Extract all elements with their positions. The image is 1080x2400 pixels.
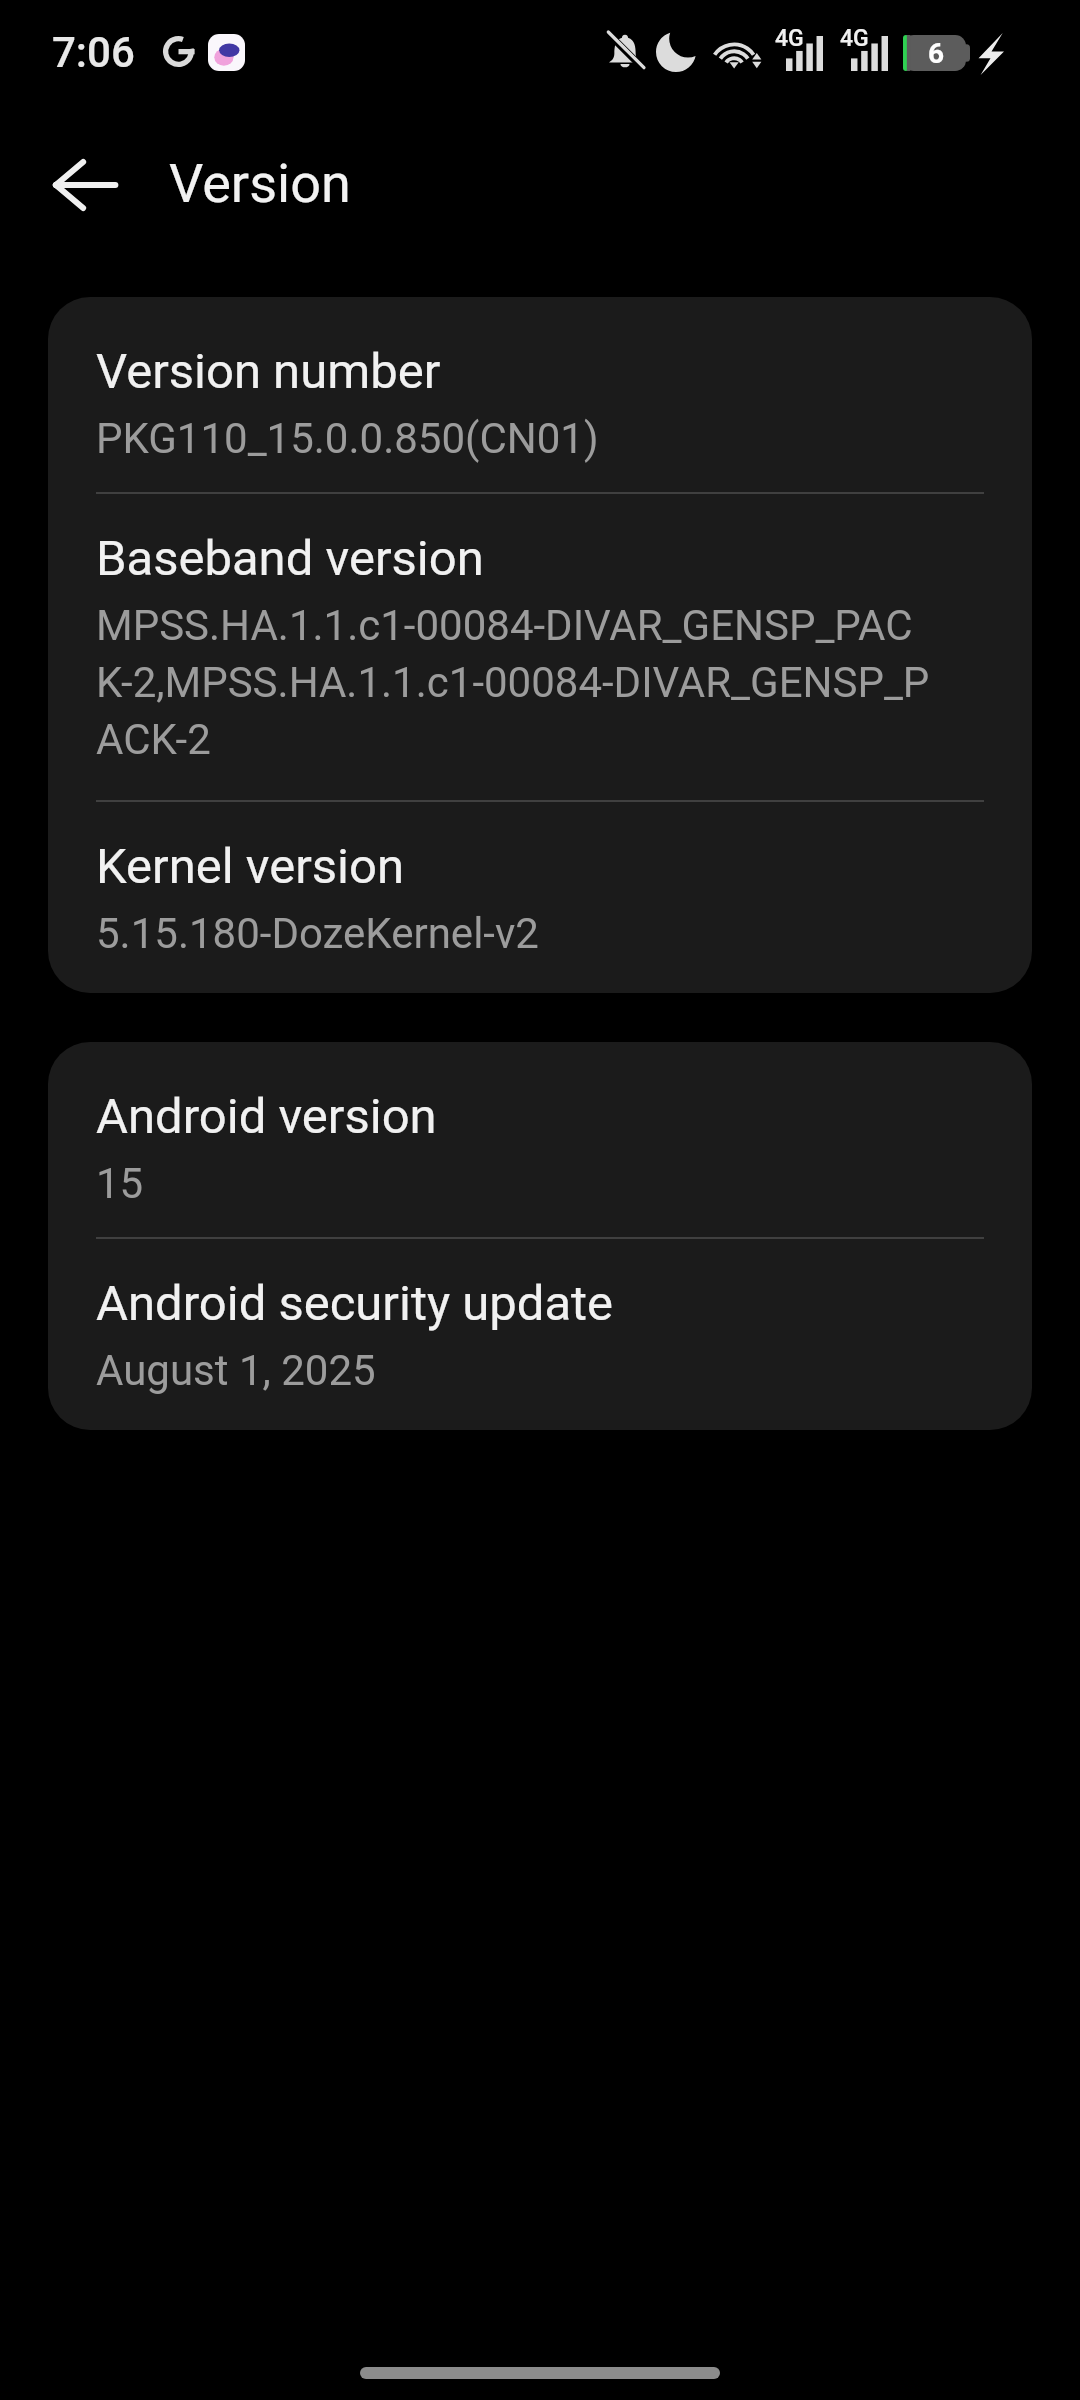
staticText: Baseband version	[96, 531, 484, 587]
staticText: 6	[928, 37, 945, 70]
staticText: Version	[169, 152, 351, 215]
button[interactable]: Android security update	[48, 1276, 1032, 1397]
staticText: 4G	[775, 25, 804, 52]
staticText: August 1, 2025	[96, 1340, 376, 1397]
button[interactable]: Android version	[48, 1089, 1032, 1210]
staticText: Version number	[96, 344, 441, 400]
staticText: Kernel version	[96, 839, 405, 895]
staticText: Android security update	[96, 1276, 614, 1332]
staticText: MPSS.HA.1.1.c1-00084-DIVAR_GENSP_PAC K-2…	[96, 595, 930, 766]
staticText: Android version	[96, 1089, 437, 1145]
staticText: PKG110_15.0.0.850(CN01)	[96, 408, 599, 465]
button[interactable]: Version number	[48, 344, 1032, 465]
button[interactable]: Baseband version	[48, 531, 1032, 766]
button[interactable]: Kernel version	[48, 839, 1032, 960]
staticText: 4G	[840, 25, 869, 52]
staticText: 7:06	[52, 28, 135, 77]
button[interactable]: Back	[33, 133, 137, 237]
staticText: 15	[96, 1153, 144, 1210]
staticText: 5.15.180-DozeKernel-v2	[96, 903, 539, 960]
